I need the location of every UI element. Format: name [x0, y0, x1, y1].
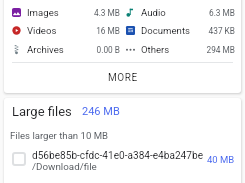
staticText: Large files [12, 104, 72, 119]
staticText: Documents [141, 25, 190, 36]
staticText: Others [141, 44, 170, 55]
staticText: 40 MB [207, 154, 235, 165]
button[interactable]: MORE [4, 63, 241, 93]
staticText: 294 MB [170, 45, 235, 55]
button[interactable]: Archives [12, 40, 120, 59]
staticText: Audio [141, 7, 166, 18]
staticText: Images [27, 7, 59, 18]
button[interactable]: Documents [126, 21, 235, 40]
staticText: 246 MB [82, 105, 120, 118]
staticText: 16 MB [57, 26, 120, 36]
staticText: 6.3 MB [166, 8, 235, 18]
staticText: Archives [27, 44, 64, 55]
staticText: MORE [108, 72, 138, 84]
staticText: 0.00 B [64, 45, 120, 55]
staticText: Files larger than 10 MB [10, 130, 109, 141]
button[interactable]: Images [12, 3, 120, 22]
staticText: /Download/file [32, 161, 97, 172]
button[interactable]: d56be85b-cfdc-41e0-a384-e4ba247be… [4, 145, 241, 177]
button[interactable]: Others [126, 40, 235, 59]
staticText: 437 KB [190, 26, 235, 36]
staticText: 4.3 MB [59, 8, 120, 18]
staticText: d56be85b-cfdc-41e0-a384-e4ba247be… [32, 150, 203, 162]
button[interactable]: Audio [126, 3, 235, 22]
button[interactable]: Videos [12, 21, 120, 40]
staticText: Videos [27, 25, 57, 36]
